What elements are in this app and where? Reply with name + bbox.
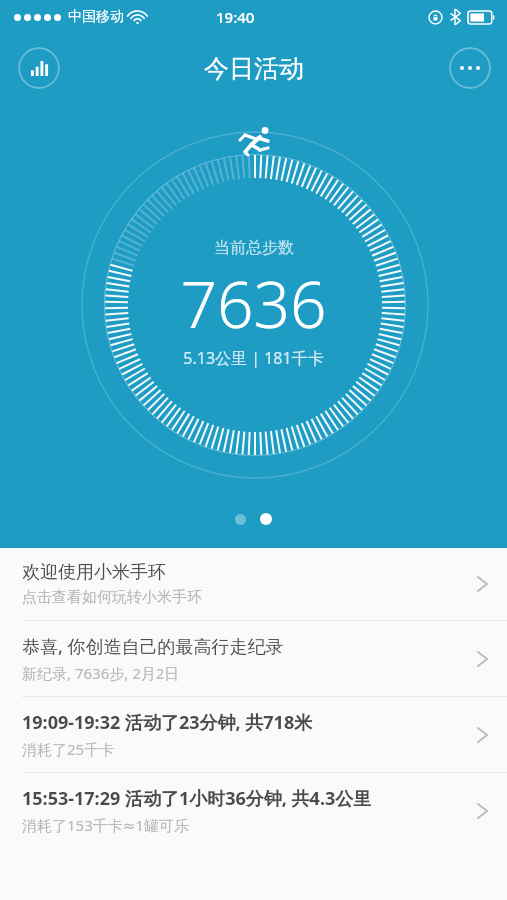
staticText: 5.13公里 | 181千卡 [183,347,324,369]
button[interactable]: 15:53-17:29 活动了1小时36分钟, 共4.3公里 [0,773,507,848]
staticText: 消耗了25千卡 [22,739,115,759]
staticText: 19:40 [216,7,255,27]
staticText: 今日活动 [204,53,304,84]
button[interactable]: 第2页 [260,513,272,525]
staticText: 欢迎使用小米手环 [22,561,166,584]
staticText: 中国移动 [68,8,124,26]
button[interactable]: 欢迎使用小米手环 [0,548,507,620]
staticText: 当前总步数 [214,238,294,258]
button[interactable]: 更多 [449,47,491,89]
button[interactable]: 统计 [18,47,60,89]
staticText: 消耗了153千卡≈1罐可乐 [22,815,189,835]
button[interactable]: 第1页 [235,514,246,525]
staticText: 7636 [180,260,327,347]
button[interactable]: 恭喜, 你创造自己的最高行走纪录 [0,621,507,696]
staticText: 新纪录, 7636步, 2月2日 [22,663,180,683]
staticText: 19:09-19:32 活动了23分钟, 共718米 [22,710,313,735]
staticText: 恭喜, 你创造自己的最高行走纪录 [22,634,284,659]
button[interactable]: 19:09-19:32 活动了23分钟, 共718米 [0,697,507,772]
staticText: 15:53-17:29 活动了1小时36分钟, 共4.3公里 [22,786,372,811]
staticText: 点击查看如何玩转小米手环 [22,588,202,607]
